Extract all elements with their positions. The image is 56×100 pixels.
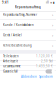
staticText: ›	[52, 43, 53, 48]
staticText: Abbrechen	[21, 75, 37, 78]
button[interactable]: Gerät / Artikel	[0, 30, 56, 40]
button[interactable]: Kunde / Kontaktdaten	[0, 20, 56, 30]
staticText: 9:41	[2, 1, 9, 4]
staticText: ›	[52, 22, 53, 28]
staticText: Garantiefall	[3, 70, 18, 73]
staticText: Fehlerbeschreibung	[3, 44, 32, 47]
staticText: ›	[52, 12, 53, 17]
staticText: Reparaturauftrag	[15, 5, 41, 9]
staticText: 2,50 Std	[41, 59, 53, 63]
staticText: Teilekosten	[3, 54, 19, 58]
staticText: ıll ≋ ▮	[46, 1, 54, 4]
staticText: Arbeitszeit	[3, 59, 18, 63]
staticText: ›	[52, 33, 53, 38]
button[interactable]: Fehlerbeschreibung	[0, 40, 56, 51]
button[interactable]: Garantiefall	[0, 69, 56, 74]
button[interactable]: Speichern	[39, 75, 53, 78]
staticText: Reparaturauftrag-Nummer	[3, 13, 37, 16]
button[interactable]: Reparaturauftrag-Nummer	[0, 9, 56, 20]
staticText: Gerät / Artikel	[3, 33, 22, 37]
staticText: Gesamtsumme	[3, 64, 21, 68]
staticText: Speichern	[39, 75, 53, 78]
staticText: 1.120,00 €	[36, 54, 53, 58]
staticText: 1.433,50 €	[36, 64, 53, 68]
button[interactable]: Abbrechen	[21, 75, 37, 78]
staticText: Kunde / Kontaktdaten	[3, 23, 34, 27]
